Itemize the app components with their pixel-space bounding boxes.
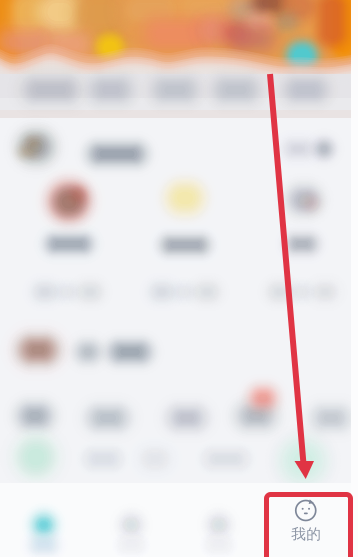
button[interactable]: Tab <box>0 483 87 557</box>
button[interactable]: Tab <box>87 483 175 557</box>
staticText: 我的 <box>291 525 321 543</box>
button[interactable]: Tab <box>175 483 262 557</box>
button[interactable]: 我的 <box>262 483 350 557</box>
